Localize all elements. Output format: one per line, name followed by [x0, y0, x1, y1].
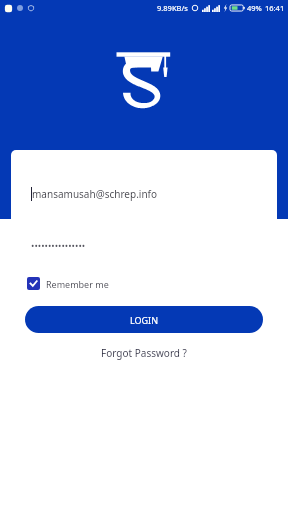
button[interactable]: mansamusah@schrep.info [21, 177, 267, 210]
staticText: 9.89KB/s [157, 3, 188, 13]
staticText: •••••••••••••••• [31, 239, 86, 251]
staticText: 49% [247, 3, 262, 13]
staticText: LOGIN [130, 314, 159, 326]
staticText: mansamusah@schrep.info [32, 187, 158, 201]
button[interactable]: •••••••••••••••• [21, 228, 267, 261]
button[interactable]: Remember me [27, 277, 109, 290]
staticText: Remember me [46, 278, 109, 290]
staticText: 16:41 [265, 3, 285, 13]
other: Remember me [27, 277, 40, 290]
button[interactable]: Forgot Password ? [101, 346, 187, 360]
button[interactable]: LOGIN [25, 306, 263, 333]
